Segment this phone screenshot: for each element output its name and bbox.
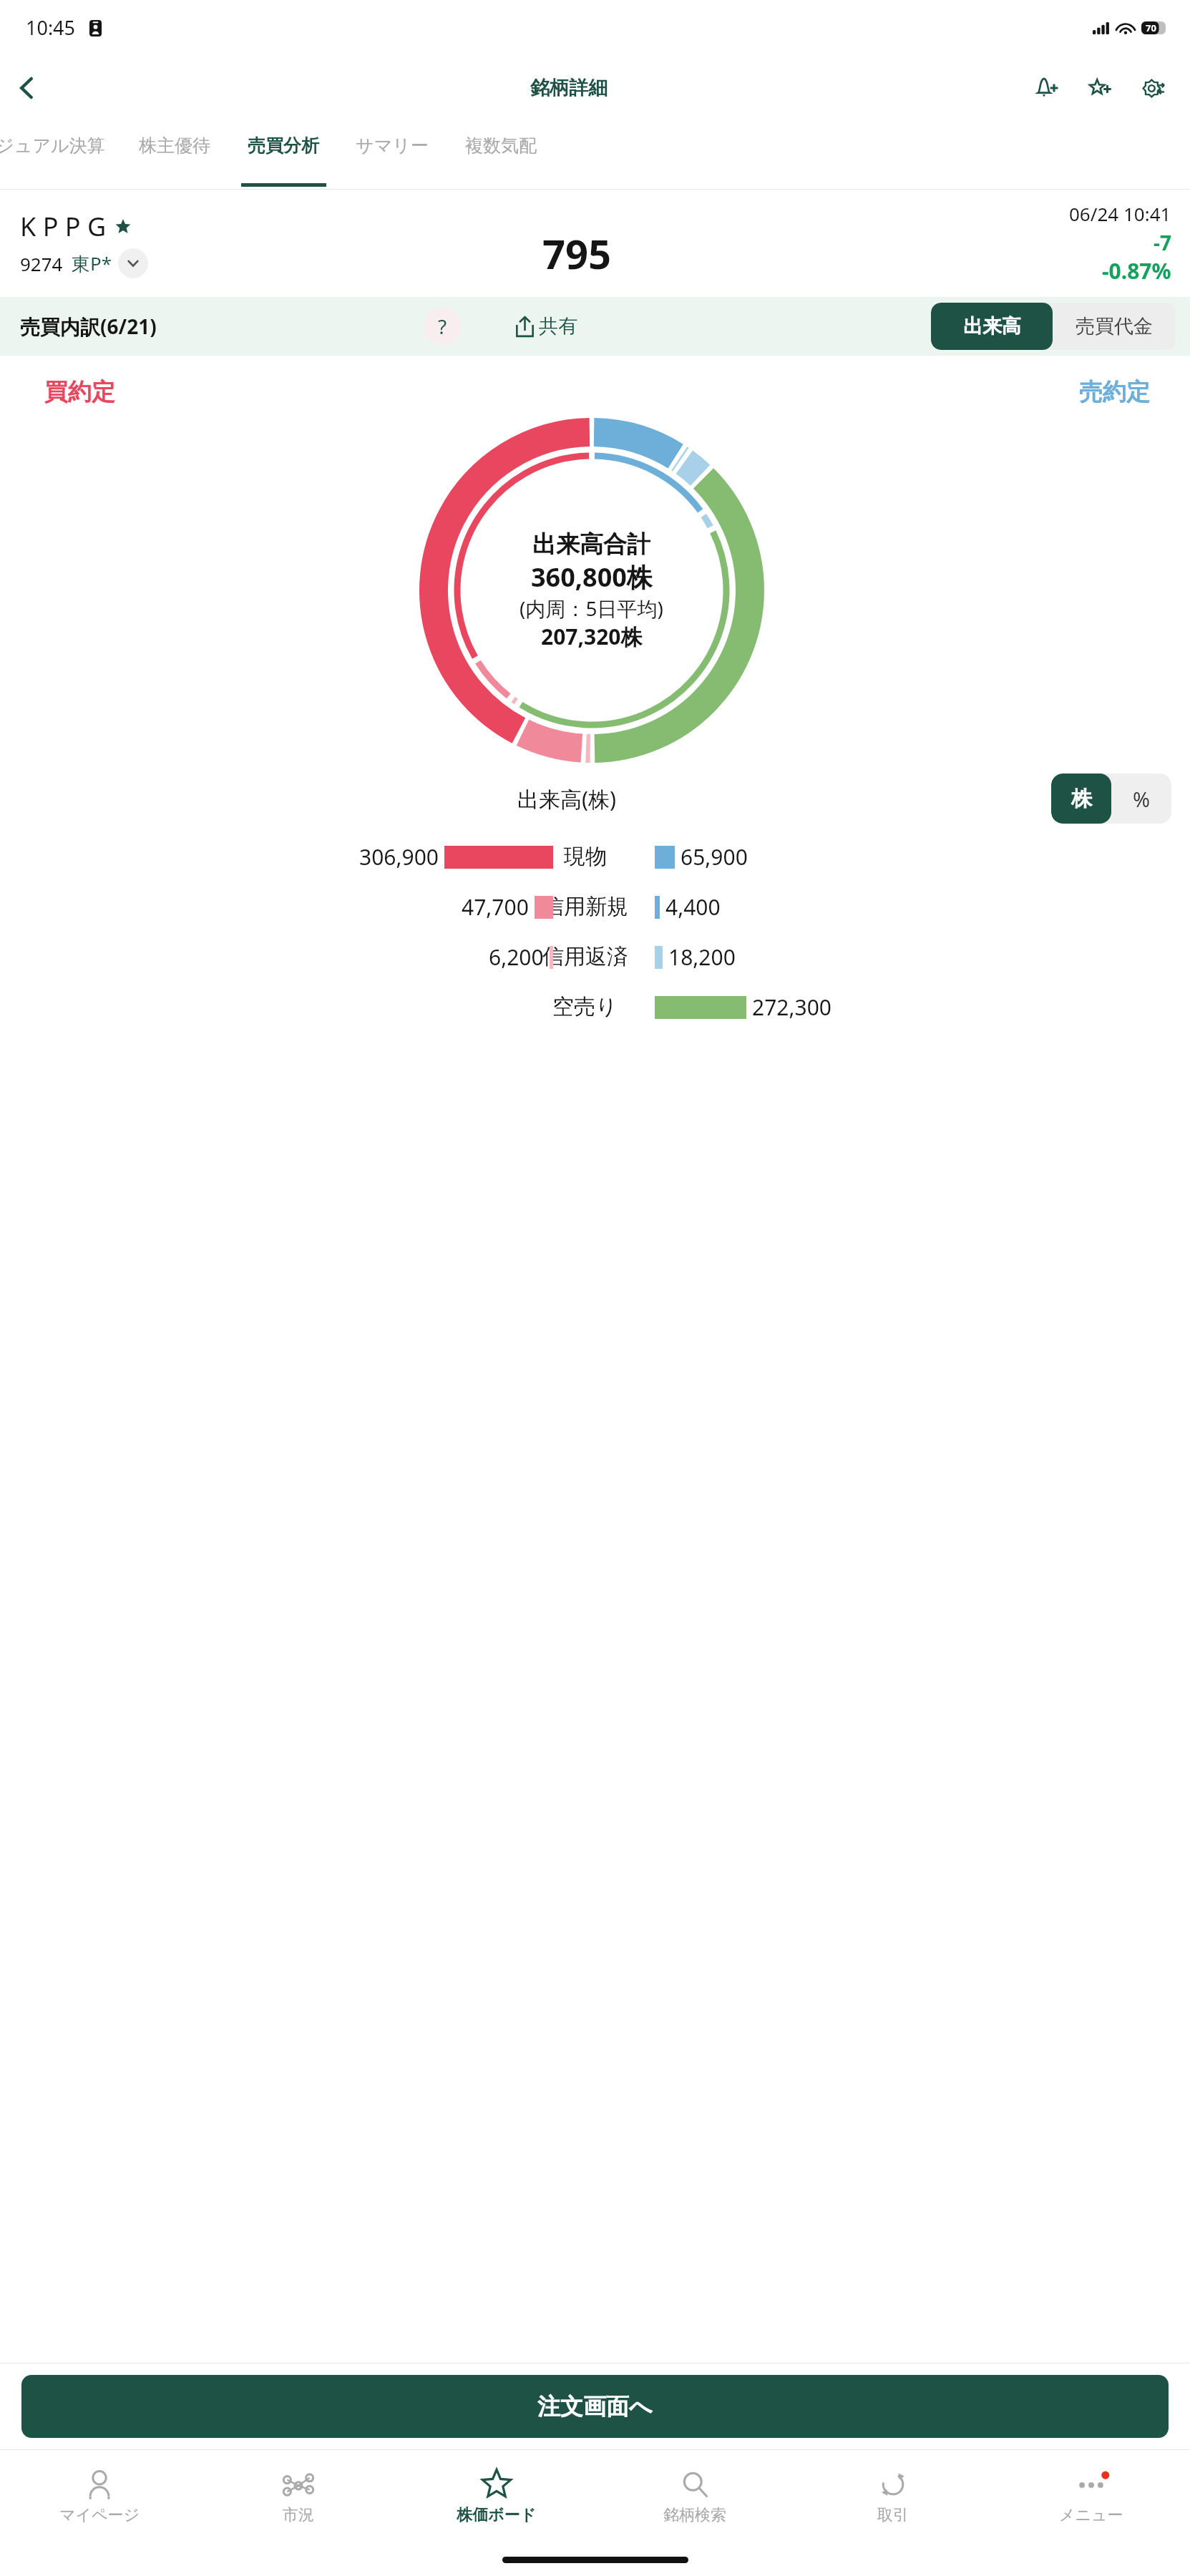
staticText: 銘柄詳細 (530, 76, 608, 100)
button[interactable]: Back (6, 67, 49, 109)
staticText: 360,800株 (531, 560, 653, 595)
button[interactable]: マイページ (0, 2450, 199, 2543)
button[interactable]: 注文画面へ (21, 2375, 1169, 2438)
staticText: 207,320株 (541, 622, 643, 651)
button[interactable]: % (1111, 774, 1171, 824)
staticText: 出来高(株) (517, 784, 616, 814)
staticText: 出来高合計 (532, 530, 650, 560)
button[interactable]: 空売り (0, 985, 1190, 1028)
staticText: -0.87% (1102, 256, 1171, 286)
staticText: 株価ボード (457, 2505, 537, 2525)
staticText: 70 (1146, 21, 1156, 34)
staticText: K P P G (20, 209, 107, 244)
button[interactable]: 信用返済 (0, 935, 1190, 978)
button[interactable]: 取引 (794, 2450, 992, 2543)
staticText: 65,900 (681, 842, 748, 872)
button[interactable]: 出来高 (931, 303, 1053, 350)
staticText: 売買代金 (1076, 314, 1153, 338)
button[interactable]: Help (424, 308, 461, 345)
staticText: 市況 (283, 2505, 314, 2525)
staticText: ジュアル決算 (0, 135, 105, 157)
staticText: メニュー (1059, 2505, 1123, 2525)
button[interactable]: 現物 (0, 835, 1190, 878)
staticText: 4,400 (665, 892, 721, 922)
staticText: 出来高 (963, 314, 1021, 338)
button[interactable]: Add alert (1025, 66, 1070, 110)
staticText: 信用新規 (542, 893, 628, 920)
staticText: 東P* (72, 250, 112, 276)
button[interactable]: 売買代金 (1053, 303, 1176, 350)
button[interactable]: ジュアル決算 (0, 120, 120, 189)
staticText: 795 (542, 226, 612, 280)
staticText: 現物 (564, 843, 607, 870)
staticText: サマリー (356, 135, 429, 157)
button[interactable]: 銘柄検索 (595, 2450, 794, 2543)
button[interactable]: Add to favorites (1078, 66, 1123, 110)
staticText: 信用返済 (542, 943, 628, 970)
staticText: 売買内訳(6/21) (20, 313, 157, 340)
button[interactable]: 信用新規 (0, 885, 1190, 928)
staticText: 6,200 (489, 942, 544, 972)
staticText: 注文画面へ (537, 2392, 653, 2421)
staticText: 共有 (539, 314, 577, 338)
button[interactable]: 株 (1051, 774, 1111, 824)
button[interactable]: メニュー (992, 2450, 1190, 2543)
staticText: 10:45 (26, 14, 76, 41)
staticText: 株主優待 (139, 135, 210, 157)
button[interactable]: Expand (118, 248, 148, 278)
staticText: 272,300 (752, 992, 831, 1022)
staticText: 銘柄検索 (663, 2505, 726, 2525)
staticText: % (1133, 785, 1151, 813)
staticText: (内周：5日平均) (520, 595, 663, 622)
staticText: 売買分析 (248, 135, 319, 157)
staticText: 18,200 (668, 942, 736, 972)
staticText: 47,700 (462, 892, 529, 922)
button[interactable]: 株主優待 (120, 120, 229, 189)
staticText: 買約定 (44, 377, 115, 407)
button[interactable]: 市況 (199, 2450, 397, 2543)
button[interactable]: 複数気配 (447, 120, 555, 189)
button[interactable]: サマリー (338, 120, 447, 189)
staticText: 売約定 (1079, 377, 1150, 407)
staticText: 306,900 (359, 842, 439, 872)
button[interactable]: 株価ボード (397, 2450, 595, 2543)
staticText: マイページ (59, 2505, 140, 2525)
staticText: 空売り (552, 993, 618, 1020)
staticText: 取引 (877, 2505, 909, 2525)
staticText: ? (438, 313, 447, 340)
staticText: 株 (1071, 786, 1092, 812)
staticText: 06/24 10:41 (1069, 201, 1171, 226)
button[interactable]: 売買分析 (229, 120, 338, 189)
staticText: -7 (1154, 229, 1171, 256)
staticText: 9274 (20, 251, 63, 276)
button[interactable]: Settings (1131, 66, 1176, 110)
button[interactable]: 共有 (514, 314, 577, 338)
staticText: 複数気配 (465, 135, 537, 157)
